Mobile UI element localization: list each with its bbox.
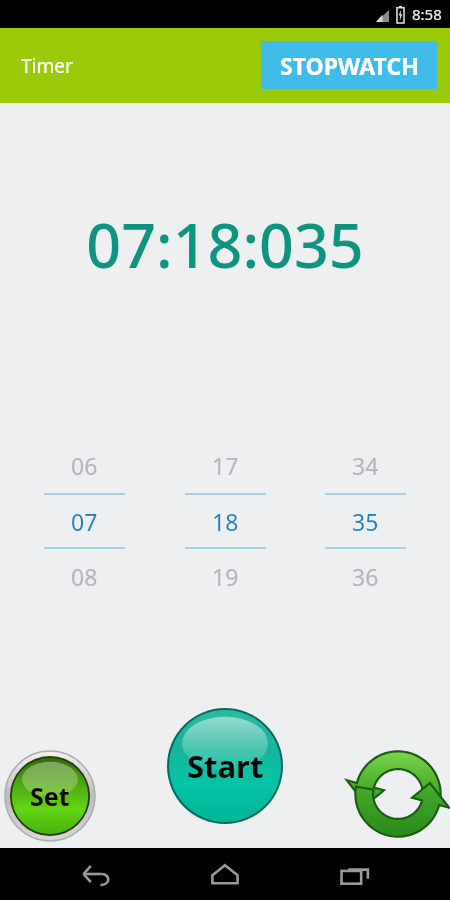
staticText: 8:58: [412, 4, 442, 24]
button[interactable]: Home: [190, 848, 260, 900]
staticText: 06: [71, 450, 98, 481]
staticText: 07:18:035: [86, 203, 364, 286]
button[interactable]: 17: [185, 450, 266, 592]
staticText: STOPWATCH: [280, 50, 419, 81]
button[interactable]: Back: [60, 848, 130, 900]
staticText: 07: [71, 506, 98, 537]
button[interactable]: 06: [44, 450, 125, 592]
button[interactable]: Start: [167, 708, 283, 824]
staticText: Set: [30, 779, 70, 813]
staticText: 08: [71, 561, 98, 592]
button[interactable]: STOPWATCH: [261, 41, 437, 89]
button[interactable]: Set: [5, 751, 95, 841]
staticText: 18: [212, 506, 239, 537]
button[interactable]: 34: [325, 450, 406, 592]
button[interactable]: Reset: [346, 742, 450, 846]
staticText: 34: [352, 450, 379, 481]
staticText: Timer: [21, 53, 73, 79]
staticText: 17: [212, 450, 239, 481]
staticText: 36: [352, 561, 379, 592]
staticText: 19: [212, 561, 239, 592]
staticText: 35: [352, 506, 379, 537]
button[interactable]: Recent apps: [320, 848, 390, 900]
staticText: Start: [187, 745, 264, 787]
